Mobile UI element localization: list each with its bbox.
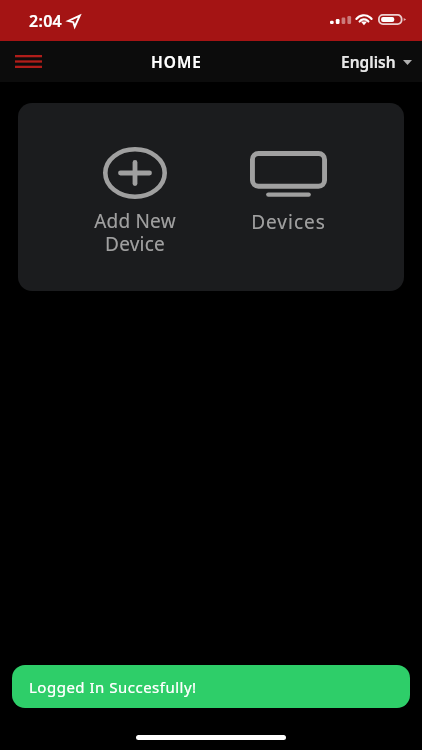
button[interactable]: Devices [228, 103, 348, 235]
staticText: 2:04 [29, 10, 63, 32]
button[interactable]: Logged In Succesfully! [12, 665, 410, 708]
button[interactable]: Add New Device [75, 103, 195, 257]
button[interactable]: English [339, 51, 414, 72]
staticText: HOME [151, 51, 202, 72]
staticText: Add New Device [94, 208, 176, 257]
button[interactable]: Menu [2, 41, 54, 82]
staticText: Devices [251, 209, 326, 235]
staticText: English [341, 51, 396, 72]
staticText: Logged In Succesfully! [29, 677, 197, 697]
